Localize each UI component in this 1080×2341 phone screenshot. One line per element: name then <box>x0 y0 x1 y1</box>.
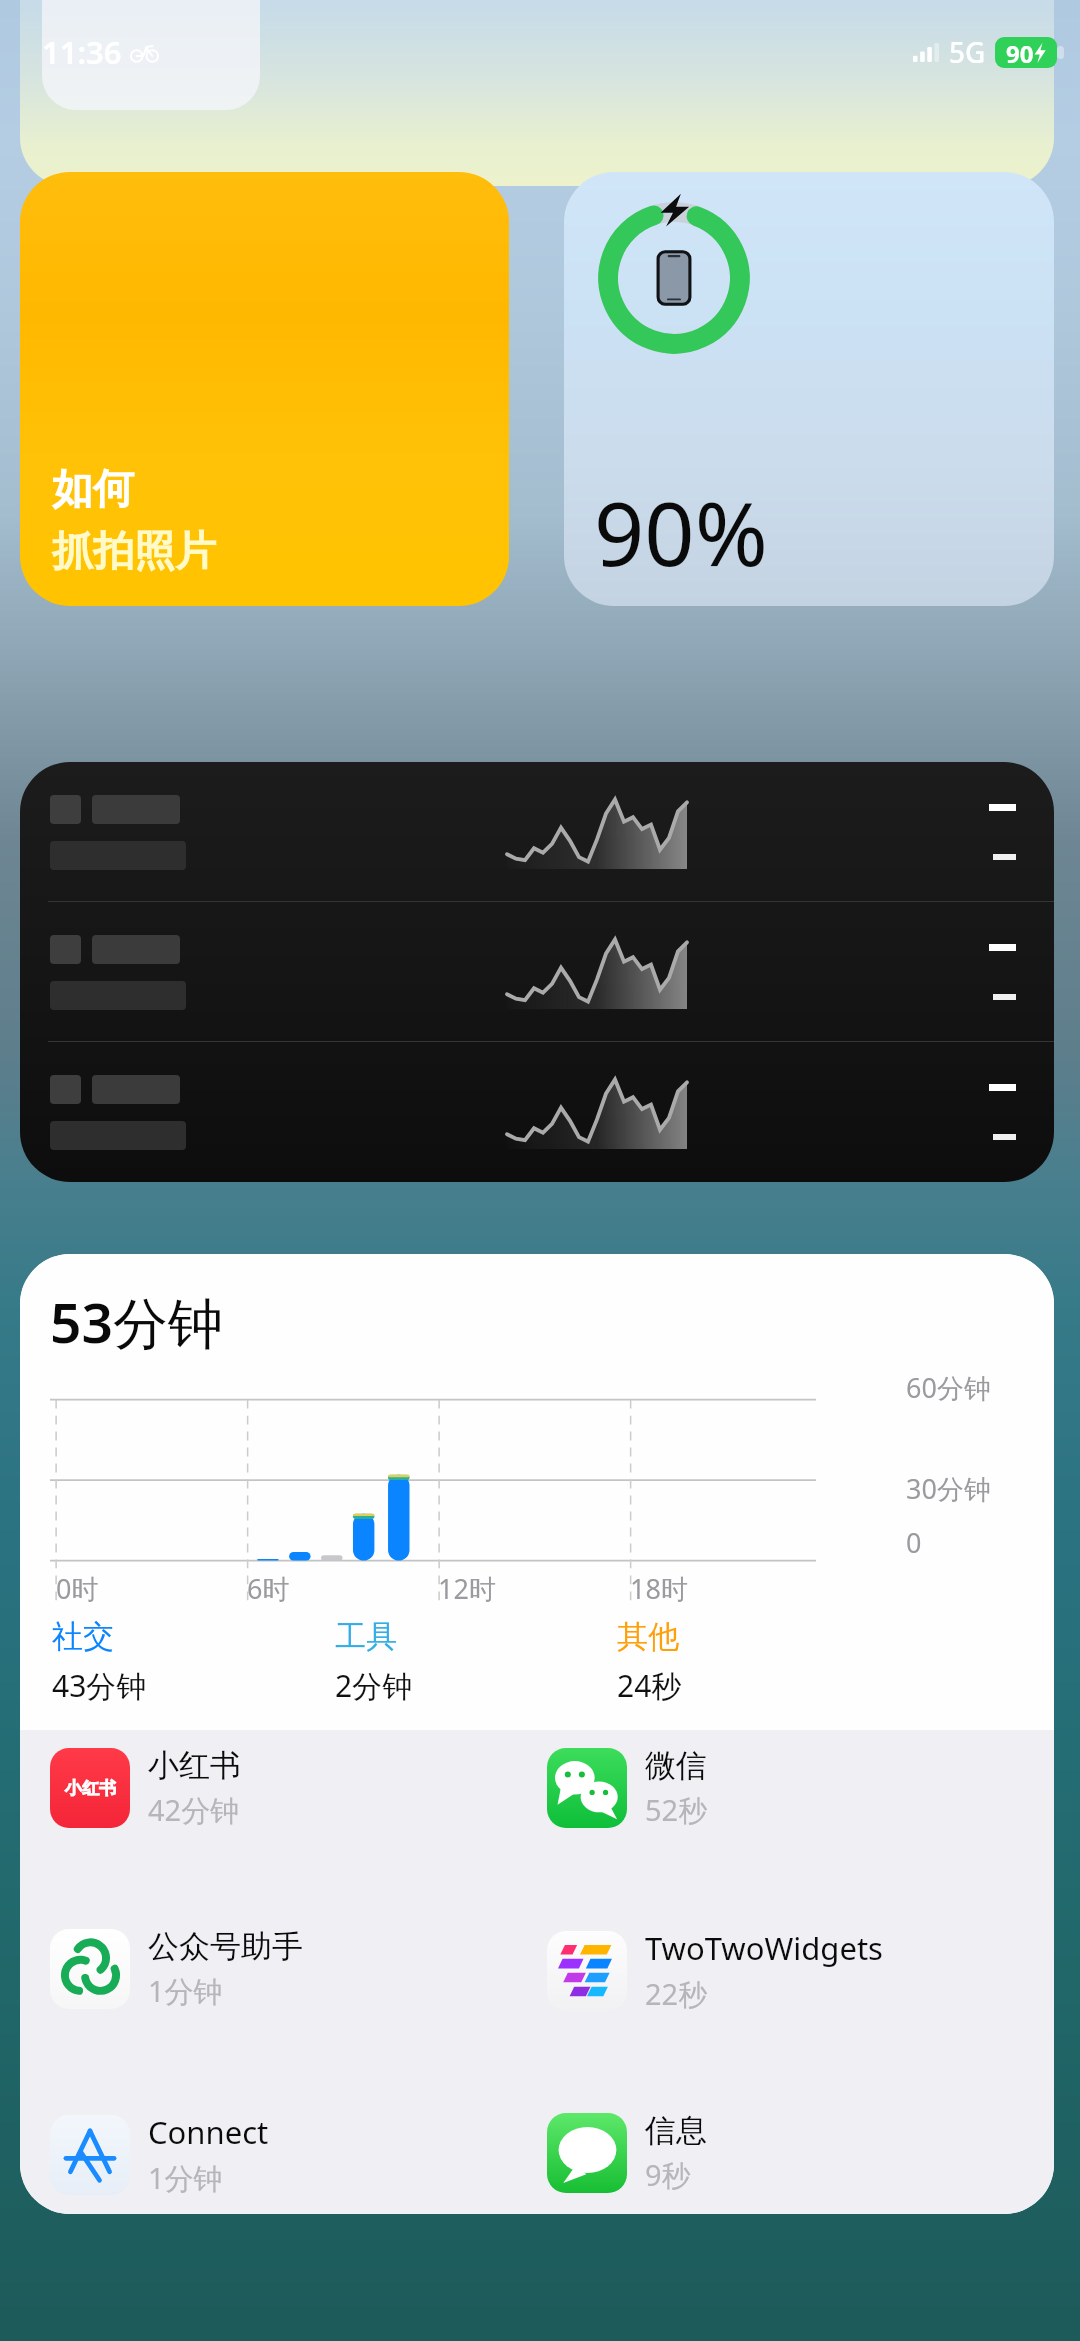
staticText: 公众号助手 <box>148 1927 303 1966</box>
button[interactable]: 公众号助手 <box>50 1927 537 2011</box>
button[interactable]: 小红书 <box>50 1746 537 1830</box>
staticText: 工具 <box>335 1617 397 1656</box>
button[interactable]: 53分钟 <box>20 1254 1054 2214</box>
staticText: 90% <box>594 472 768 592</box>
button[interactable]: 社交 <box>52 1617 335 1706</box>
button[interactable]: Connect <box>50 2111 537 2198</box>
staticText: 42分钟 <box>148 1790 240 1830</box>
staticText: 0时 <box>56 1570 99 1607</box>
staticText: 其他 <box>617 1617 679 1656</box>
staticText: 2分钟 <box>335 1665 413 1706</box>
button[interactable]: Battery 90 percent, charging <box>564 172 1054 606</box>
staticText: 0 <box>906 1524 922 1561</box>
staticText: 53分钟 <box>50 1284 223 1359</box>
staticText: 6时 <box>247 1570 290 1607</box>
staticText: 43分钟 <box>52 1665 147 1706</box>
button[interactable]: 如何 <box>20 172 509 606</box>
button[interactable]: 信息 <box>547 2111 1054 2195</box>
staticText: 9秒 <box>645 2155 691 2195</box>
staticText: 微信 <box>645 1746 707 1785</box>
staticText: 30分钟 <box>906 1470 991 1507</box>
staticText: 如何 <box>52 464 134 516</box>
staticText: 11:36 <box>42 31 122 73</box>
button[interactable]: 其他 <box>617 1617 899 1706</box>
button[interactable]: TwoTwoWidgets <box>547 1927 1054 2014</box>
staticText: 90 <box>1006 37 1034 68</box>
staticText: 抓拍照片 <box>52 526 216 578</box>
staticText: 1分钟 <box>148 2158 223 2198</box>
staticText: 社交 <box>52 1617 114 1656</box>
staticText: Connect <box>148 2111 269 2153</box>
staticText: TwoTwoWidgets <box>645 1927 883 1969</box>
staticText: 小红书 <box>148 1746 241 1785</box>
staticText: 5G <box>949 33 986 71</box>
staticText: 信息 <box>645 2111 707 2150</box>
staticText: 1分钟 <box>148 1971 223 2011</box>
button[interactable]: Stocks widget <box>20 762 1054 1182</box>
staticText: 12时 <box>438 1570 496 1607</box>
staticText: 24秒 <box>617 1665 682 1706</box>
staticText: 18时 <box>630 1570 688 1607</box>
button[interactable]: 工具 <box>335 1617 617 1706</box>
button[interactable]: 微信 <box>547 1746 1054 1830</box>
staticText: 小红书 <box>65 1778 116 1799</box>
staticText: 22秒 <box>645 1974 708 2014</box>
staticText: 60分钟 <box>906 1369 991 1406</box>
staticText: 52秒 <box>645 1790 708 1830</box>
